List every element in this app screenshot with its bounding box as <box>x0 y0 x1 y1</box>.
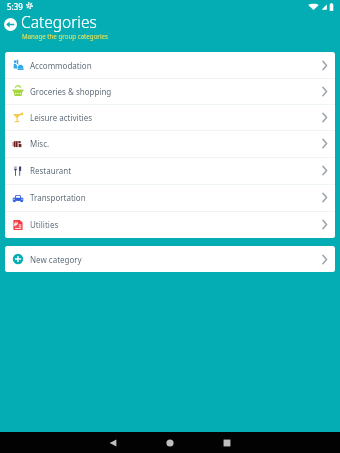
staticText: Transportation <box>30 192 86 203</box>
button[interactable]: Leisure activities <box>5 104 335 130</box>
staticText: Utilities <box>30 219 59 230</box>
staticText: 5:39 <box>7 1 23 12</box>
staticText: Manage the group categories <box>22 32 108 40</box>
staticText: Groceries & shopping <box>30 86 112 97</box>
button[interactable]: Recent apps <box>206 432 247 453</box>
staticText: Categories <box>21 11 97 32</box>
button[interactable]: Accommodation <box>5 52 335 78</box>
button[interactable]: Utilities <box>5 211 335 238</box>
button[interactable]: Misc. <box>5 130 335 157</box>
staticText: Accommodation <box>30 60 92 71</box>
staticText: Restaurant <box>30 165 72 176</box>
button[interactable]: Home <box>149 432 190 453</box>
staticText: Leisure activities <box>30 112 92 123</box>
button[interactable]: Restaurant <box>5 157 335 184</box>
button[interactable]: Transportation <box>5 184 335 211</box>
button[interactable]: New category <box>5 246 335 272</box>
staticText: Misc. <box>30 138 50 149</box>
staticText: New category <box>30 254 82 265</box>
button[interactable]: Back <box>1 15 19 33</box>
button[interactable]: Groceries & shopping <box>5 78 335 104</box>
button[interactable]: Back <box>92 432 133 453</box>
